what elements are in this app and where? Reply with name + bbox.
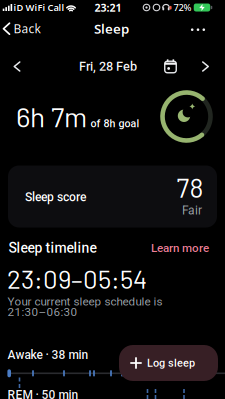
- staticText: Sleep score: [25, 190, 86, 204]
- staticText: 21:30–06:30: [7, 305, 77, 319]
- staticText: Sleep: [94, 20, 129, 37]
- button[interactable]: Log sleep: [119, 345, 218, 381]
- staticText: Sleep timeline: [8, 240, 96, 256]
- staticText: Awake · 38 min: [7, 348, 88, 362]
- button[interactable]: Learn more: [151, 241, 209, 255]
- button[interactable]: More: [191, 28, 205, 31]
- staticText: Fri, 28 Feb: [79, 59, 137, 74]
- button[interactable]: Fri, 28 Feb: [79, 59, 137, 74]
- button[interactable]: Sleep score: [8, 165, 217, 227]
- staticText: 6h 7m: [16, 99, 87, 133]
- staticText: Log sleep: [147, 357, 195, 369]
- staticText: 23:09–05:54: [7, 263, 147, 294]
- staticText: Fair: [182, 203, 202, 218]
- button[interactable]: Choose date: [165, 61, 176, 73]
- staticText: 23:21: [94, 0, 121, 15]
- staticText: of 8h goal: [90, 117, 139, 130]
- staticText: Learn more: [151, 241, 209, 255]
- staticText: Your current sleep schedule is: [7, 295, 162, 308]
- staticText: iD WiFi Call: [13, 1, 64, 14]
- button[interactable]: Back: [3, 21, 40, 37]
- staticText: 78: [176, 171, 203, 203]
- button[interactable]: Next day: [197, 56, 214, 77]
- button[interactable]: Previous day: [8, 56, 26, 77]
- staticText: REM · 50 min: [7, 388, 78, 399]
- staticText: Back: [13, 21, 40, 37]
- staticText: 72%: [173, 1, 191, 14]
